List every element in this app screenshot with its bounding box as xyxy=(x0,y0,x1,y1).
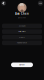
button[interactable]: Account xyxy=(2,24,42,28)
staticText: Sign Out xyxy=(19,64,25,66)
button[interactable]: Sign Out xyxy=(11,62,33,67)
staticText: @avachen xyxy=(18,17,26,19)
button[interactable]: Appearance xyxy=(2,40,42,45)
staticText: Notifications xyxy=(18,31,26,32)
button[interactable]: Back xyxy=(1,0,7,6)
button[interactable]: More options xyxy=(37,0,43,6)
button[interactable]: Notifications xyxy=(2,29,42,34)
staticText: Account xyxy=(19,25,25,27)
staticText: Ava Chen xyxy=(15,12,29,15)
staticText: Appearance xyxy=(17,42,27,44)
staticText: Privacy xyxy=(19,36,25,38)
button[interactable]: Privacy xyxy=(2,35,42,39)
